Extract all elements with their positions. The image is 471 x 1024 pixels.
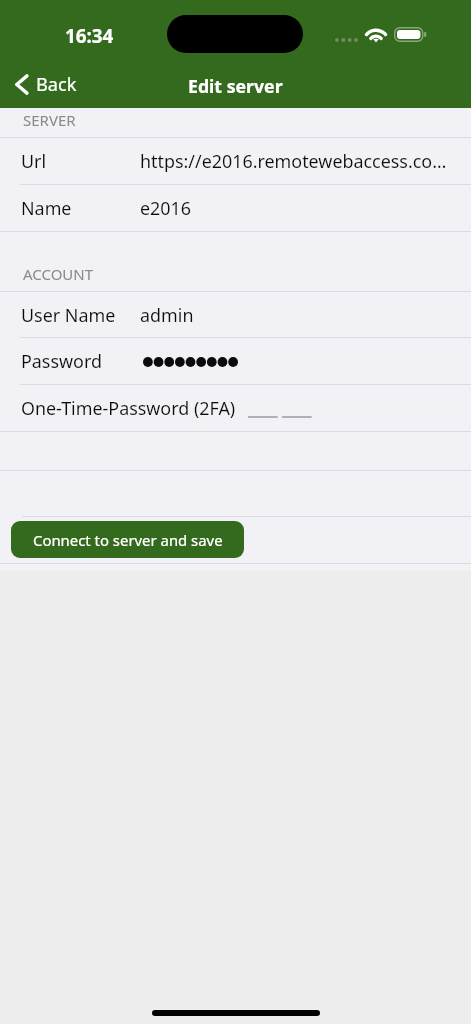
staticText: Back: [36, 72, 77, 97]
staticText: Edit server: [188, 74, 283, 98]
other: Back: [15, 74, 28, 95]
button[interactable]: Connect to server and save: [11, 521, 244, 558]
staticText: SERVER: [23, 110, 76, 130]
staticText: Url: [21, 149, 47, 173]
staticText: One-Time-Password (2FA): [21, 396, 236, 420]
staticText: Name: [21, 196, 72, 220]
staticText: ACCOUNT: [23, 264, 94, 284]
button[interactable]: Name: [0, 184, 471, 231]
staticText: Password: [21, 349, 102, 373]
staticText: admin: [140, 303, 194, 327]
button[interactable]: User Name: [0, 291, 471, 338]
button[interactable]: Url: [0, 137, 471, 184]
staticText: https://e2016.remotewebaccess.co…: [140, 149, 447, 173]
staticText: Connect to server and save: [33, 530, 223, 550]
button[interactable]: One-Time-Password (2FA): [0, 384, 471, 431]
staticText: e2016: [140, 196, 192, 220]
staticText: User Name: [21, 303, 116, 327]
staticText: 16:34: [65, 23, 114, 49]
button[interactable]: Password: [0, 337, 471, 384]
button[interactable]: Back: [5, 66, 89, 102]
